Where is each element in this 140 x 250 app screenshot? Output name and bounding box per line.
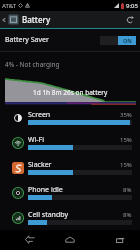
staticText: Battery <box>22 14 51 25</box>
staticText: 4% - Not charging <box>5 60 60 69</box>
button[interactable]: Cell standby <box>0 205 140 230</box>
staticText: 15% <box>120 136 132 144</box>
staticText: Screen <box>28 110 51 120</box>
staticText: Phone idle <box>28 185 63 195</box>
staticText: 8% <box>123 211 132 219</box>
staticText: 8% <box>123 186 132 194</box>
staticText: 35% <box>120 111 132 119</box>
other: Navigate up <box>1 17 7 23</box>
staticText: Wi-Fi <box>28 135 45 145</box>
button[interactable]: Screen <box>0 105 140 130</box>
button[interactable]: Recent apps <box>107 230 133 250</box>
staticText: Slacker <box>28 160 52 170</box>
button[interactable]: Phone idle <box>0 180 140 205</box>
staticText: 9:05 <box>126 2 138 10</box>
button[interactable]: Navigate up <box>0 11 51 28</box>
staticText: AT&T <box>2 2 16 10</box>
staticText: 15% <box>120 161 132 169</box>
button[interactable]: Battery Saver <box>0 29 140 51</box>
staticText: 1d 1h 8m 26s on battery <box>33 88 108 97</box>
staticText: Cell standby <box>28 210 68 220</box>
button[interactable]: Refresh <box>122 11 138 28</box>
button[interactable]: Back <box>17 230 43 250</box>
button[interactable]: Home <box>57 230 83 250</box>
staticText: ON <box>123 37 132 44</box>
staticText: Battery Saver <box>5 35 49 45</box>
button[interactable]: Wi-Fi <box>0 130 140 155</box>
button[interactable]: Slacker <box>0 155 140 180</box>
